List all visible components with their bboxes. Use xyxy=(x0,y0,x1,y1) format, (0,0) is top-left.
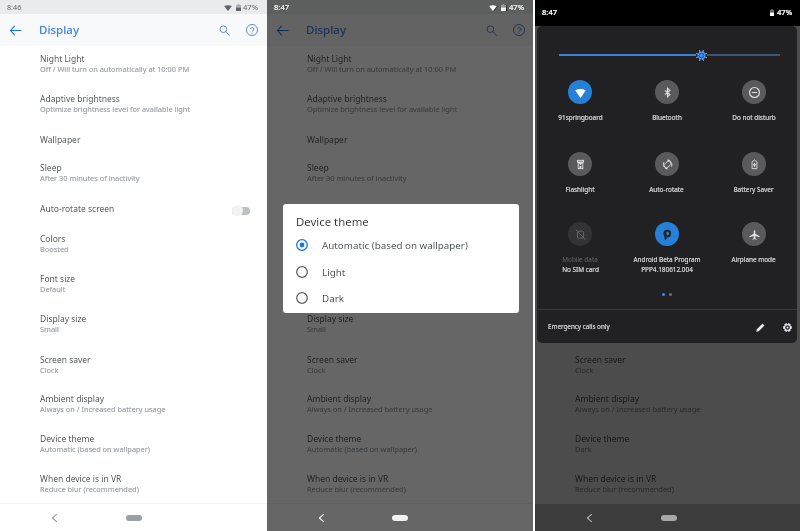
staticText: Display size xyxy=(575,313,622,325)
button[interactable]: Sleep xyxy=(535,155,800,195)
button[interactable]: Device theme xyxy=(0,426,267,466)
button[interactable]: Auto-rotate screen toggle xyxy=(232,205,250,216)
button[interactable]: Auto-rotate screen xyxy=(535,195,800,225)
button[interactable]: Screen saver xyxy=(535,347,800,387)
staticText: When device is in VR xyxy=(40,473,122,485)
button[interactable]: Screen saver xyxy=(267,347,533,387)
button[interactable]: When device is in VR xyxy=(267,466,533,506)
button[interactable]: Do not disturb xyxy=(710,80,797,122)
staticText: Device theme xyxy=(307,433,362,445)
button[interactable]: Back xyxy=(314,511,328,525)
button[interactable]: Mobile data xyxy=(537,222,623,274)
staticText: Clock xyxy=(307,365,326,375)
button[interactable]: Colors xyxy=(535,226,800,266)
button[interactable]: Back xyxy=(314,511,328,525)
button[interactable]: Light xyxy=(283,259,519,285)
button[interactable]: Night Light xyxy=(267,46,533,86)
button[interactable]: Ambient display xyxy=(0,386,267,426)
staticText: Font size xyxy=(40,273,76,285)
staticText: Clock xyxy=(575,365,594,375)
staticText: Airplane mode xyxy=(731,255,776,264)
button[interactable]: Home xyxy=(392,515,408,521)
button[interactable]: Back xyxy=(582,511,596,525)
button[interactable]: Search xyxy=(482,21,500,39)
button[interactable]: Adaptive brightness xyxy=(535,86,800,126)
staticText: Flashlight xyxy=(565,185,595,194)
button[interactable]: Night Light xyxy=(535,46,800,86)
button[interactable]: Help xyxy=(510,21,528,39)
staticText: Clock xyxy=(40,365,59,375)
staticText: 8:46 xyxy=(7,2,22,12)
staticText: Always on / Increased battery usage xyxy=(575,404,701,414)
button[interactable]: Home xyxy=(661,515,677,521)
staticText: Device theme xyxy=(575,433,630,445)
button[interactable]: Colors xyxy=(267,226,533,266)
button[interactable]: Android Beta Program xyxy=(623,222,710,274)
button[interactable]: Dark xyxy=(283,285,519,311)
button[interactable]: Flashlight xyxy=(537,152,623,194)
staticText: Colors xyxy=(40,233,66,245)
staticText: Auto-rotate screen xyxy=(307,203,382,215)
staticText: Off / Will turn on automatically at 10:0… xyxy=(307,64,457,74)
button[interactable]: Back xyxy=(6,21,24,39)
button[interactable]: Battery Saver xyxy=(710,152,797,194)
button[interactable]: Auto-rotate xyxy=(623,152,710,194)
button[interactable]: Adaptive brightness xyxy=(267,86,533,126)
staticText: Optimize brightness level for available … xyxy=(307,104,458,114)
button[interactable]: Display size xyxy=(0,306,267,346)
button[interactable]: Screen saver xyxy=(0,347,267,387)
staticText: 8:46 xyxy=(274,2,289,12)
button[interactable]: Edit xyxy=(752,319,768,335)
staticText: Small xyxy=(40,324,59,334)
button[interactable]: Device theme xyxy=(267,426,533,466)
button[interactable]: Bluetooth xyxy=(623,80,710,122)
button[interactable]: Home xyxy=(126,515,142,521)
staticText: Sleep xyxy=(575,162,597,174)
button[interactable]: Home xyxy=(392,515,408,521)
button[interactable]: When device is in VR xyxy=(0,466,267,506)
button[interactable]: Wallpaper xyxy=(267,126,533,156)
button[interactable]: Display size xyxy=(535,306,800,346)
staticText: Always on / Increased battery usage xyxy=(40,404,166,414)
button[interactable]: Night Light xyxy=(0,46,267,86)
staticText: 47% xyxy=(509,2,524,12)
staticText: Display xyxy=(306,22,346,38)
button[interactable]: Font size xyxy=(535,266,800,306)
staticText: Ambient display xyxy=(40,393,105,405)
staticText: Default xyxy=(40,284,66,294)
button[interactable]: Colors xyxy=(0,226,267,266)
button[interactable]: Ambient display xyxy=(535,386,800,426)
button[interactable]: Device theme xyxy=(535,426,800,466)
button[interactable]: Sleep xyxy=(267,155,533,195)
button[interactable]: Wallpaper xyxy=(0,126,267,156)
button[interactable]: Search xyxy=(215,21,233,39)
staticText: 8:47 xyxy=(542,7,558,17)
staticText: Screen saver xyxy=(575,354,626,366)
button[interactable]: Settings xyxy=(779,319,795,335)
staticText: 8:47 xyxy=(274,2,290,12)
button[interactable]: Display size xyxy=(267,306,533,346)
button[interactable]: Font size xyxy=(267,266,533,306)
button[interactable]: When device is in VR xyxy=(535,466,800,506)
button[interactable]: Adaptive brightness xyxy=(0,86,267,126)
staticText: Font size xyxy=(307,273,343,285)
button[interactable]: Automatic (based on wallpaper) xyxy=(283,232,519,258)
button[interactable]: 91springboard xyxy=(537,80,623,122)
staticText: Bluetooth xyxy=(652,113,682,122)
button[interactable]: Ambient display xyxy=(267,386,533,426)
button[interactable]: Auto-rotate screen xyxy=(267,195,533,225)
button[interactable]: Back xyxy=(273,21,291,39)
button[interactable]: Back xyxy=(47,511,61,525)
button[interactable]: Auto-rotate screen xyxy=(0,195,267,225)
staticText: Screen saver xyxy=(307,354,358,366)
button[interactable]: Font size xyxy=(0,266,267,306)
staticText: Auto-rotate screen xyxy=(40,203,115,215)
button[interactable]: Wallpaper xyxy=(535,126,800,156)
button[interactable]: Airplane mode xyxy=(710,222,797,264)
button[interactable]: Sleep xyxy=(0,155,267,195)
button[interactable]: Help xyxy=(243,21,261,39)
